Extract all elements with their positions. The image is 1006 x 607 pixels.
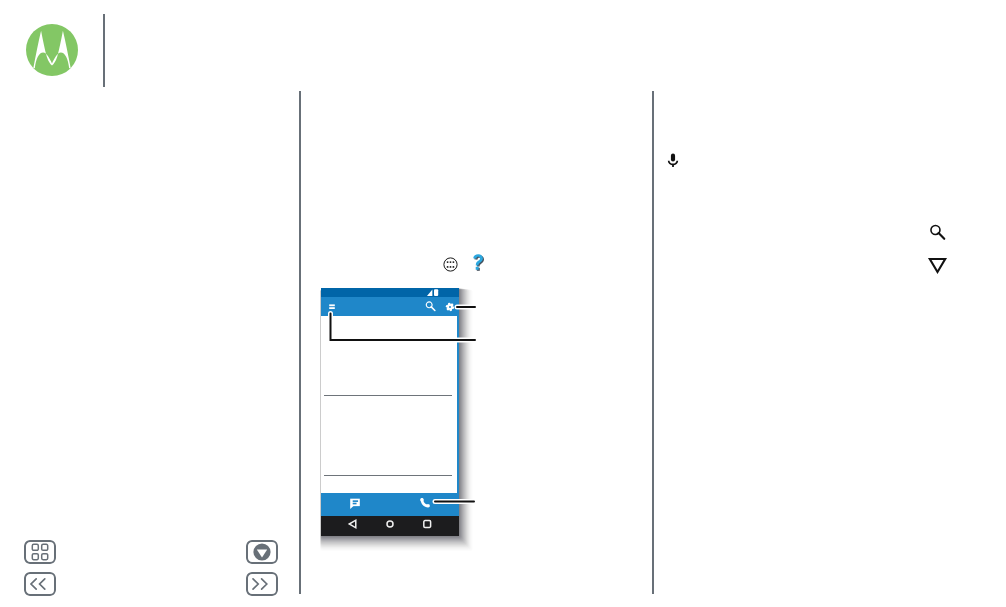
- button[interactable]: Download: [246, 540, 278, 564]
- button[interactable]: Search: [425, 301, 436, 312]
- button[interactable]: Search: [929, 224, 946, 241]
- button[interactable]: Settings: [445, 302, 455, 312]
- button[interactable]: Grid: [24, 540, 56, 564]
- button[interactable]: Expand: [928, 255, 948, 275]
- button[interactable]: Previous: [24, 572, 56, 596]
- button[interactable]: Help: [472, 254, 487, 273]
- button[interactable]: Messages: [349, 497, 361, 509]
- button[interactable]: Apps: [443, 257, 458, 272]
- button[interactable]: Voice: [665, 152, 681, 168]
- button[interactable]: Next: [246, 572, 278, 596]
- button[interactable]: Menu: [326, 301, 338, 313]
- button[interactable]: Phone: [419, 497, 431, 509]
